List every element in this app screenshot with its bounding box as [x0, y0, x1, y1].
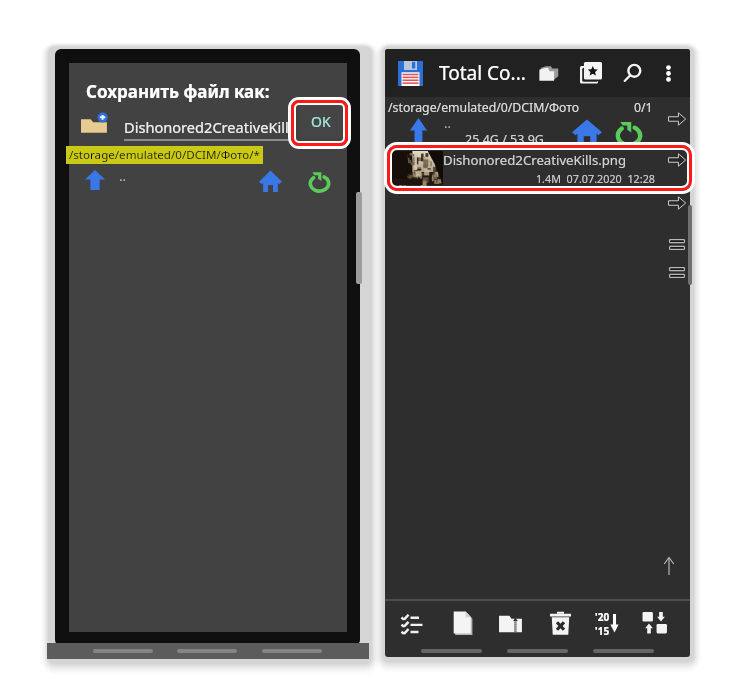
button[interactable]: More options	[653, 58, 683, 88]
staticText: /storage/emulated/0/DCIM/Фото/*	[69, 147, 260, 163]
staticText: Dishonored2CreativeKill	[124, 117, 289, 137]
staticText: '20	[595, 610, 610, 624]
staticText: ..	[444, 114, 451, 132]
button[interactable]: Sort by date	[585, 603, 629, 643]
staticText: '15	[595, 624, 610, 636]
staticText: Total Co...	[439, 60, 526, 86]
button[interactable]: New file	[442, 603, 482, 643]
staticText: Сохранить файл как:	[86, 80, 270, 103]
button[interactable]: Search	[615, 55, 651, 91]
button[interactable]: Scroll to top	[655, 551, 683, 579]
button[interactable]: Delete	[540, 603, 580, 643]
staticText: 1.4M 07.07.2020 12:28	[443, 171, 655, 186]
button[interactable]: OK	[299, 105, 342, 138]
button[interactable]: Bookmarks	[573, 55, 609, 91]
staticText: ..	[119, 167, 126, 185]
staticText: /storage/emulated/0/DCIM/Фото	[388, 99, 580, 116]
staticText: 25.4G / 53.9G	[465, 131, 544, 148]
button[interactable]: Zip	[491, 603, 531, 643]
button[interactable]: Select files	[393, 603, 433, 643]
staticText: 0/1	[634, 99, 653, 116]
staticText: Dishonored2CreativeKills.png	[443, 151, 627, 169]
button[interactable]: Copy move	[635, 603, 675, 643]
button[interactable]: Open folder	[531, 55, 567, 91]
staticText: OK	[311, 112, 331, 131]
